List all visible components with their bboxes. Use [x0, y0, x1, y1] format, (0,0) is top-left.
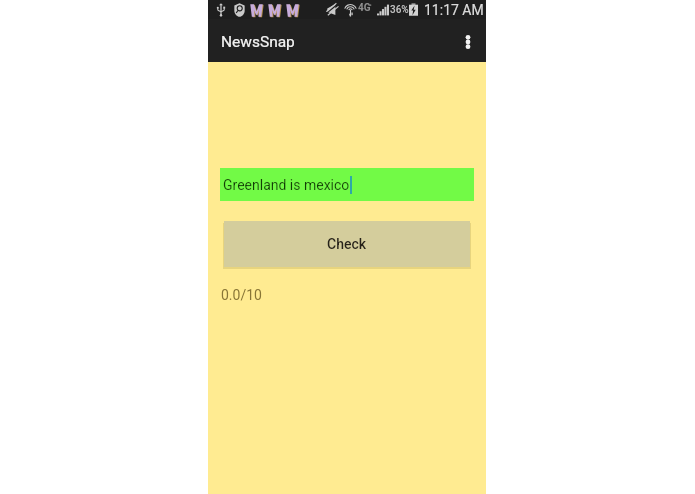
staticText: 11:17 AM [424, 2, 484, 18]
button[interactable]: Check [224, 221, 470, 267]
staticText: 36% [390, 4, 409, 16]
button[interactable]: Greenland is mexico [220, 168, 474, 201]
staticText: NewsSnap [221, 33, 295, 51]
staticText: 0.0/10 [221, 287, 262, 303]
staticText: 4G [358, 2, 371, 14]
staticText: Greenland is mexico [223, 177, 350, 193]
staticText: • [369, 1, 372, 10]
button[interactable]: More options [453, 20, 483, 63]
staticText: Check [327, 236, 367, 252]
